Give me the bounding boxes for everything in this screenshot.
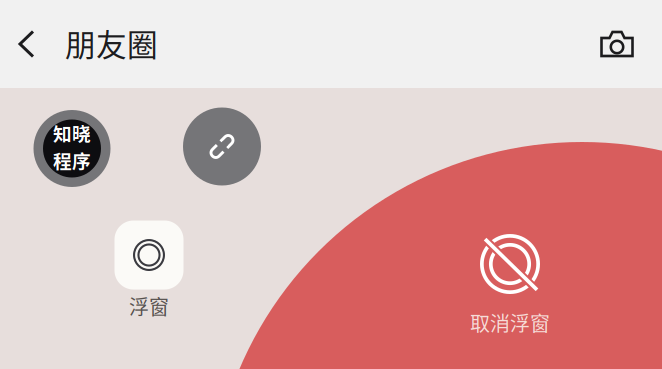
staticText: 取消浮窗 [470, 308, 550, 337]
staticText: 浮窗 [129, 291, 169, 320]
staticText: 朋友圈 [65, 21, 158, 65]
button[interactable]: 知晓程序 [33, 110, 110, 187]
button[interactable]: 浮窗 [114, 220, 183, 320]
button[interactable]: Link [183, 107, 261, 185]
staticText: 程序 [53, 146, 91, 173]
button[interactable]: Back [0, 0, 53, 88]
staticText: 知晓 [53, 119, 91, 146]
button[interactable]: Camera [586, 0, 648, 88]
button[interactable]: 取消浮窗 [470, 234, 550, 337]
